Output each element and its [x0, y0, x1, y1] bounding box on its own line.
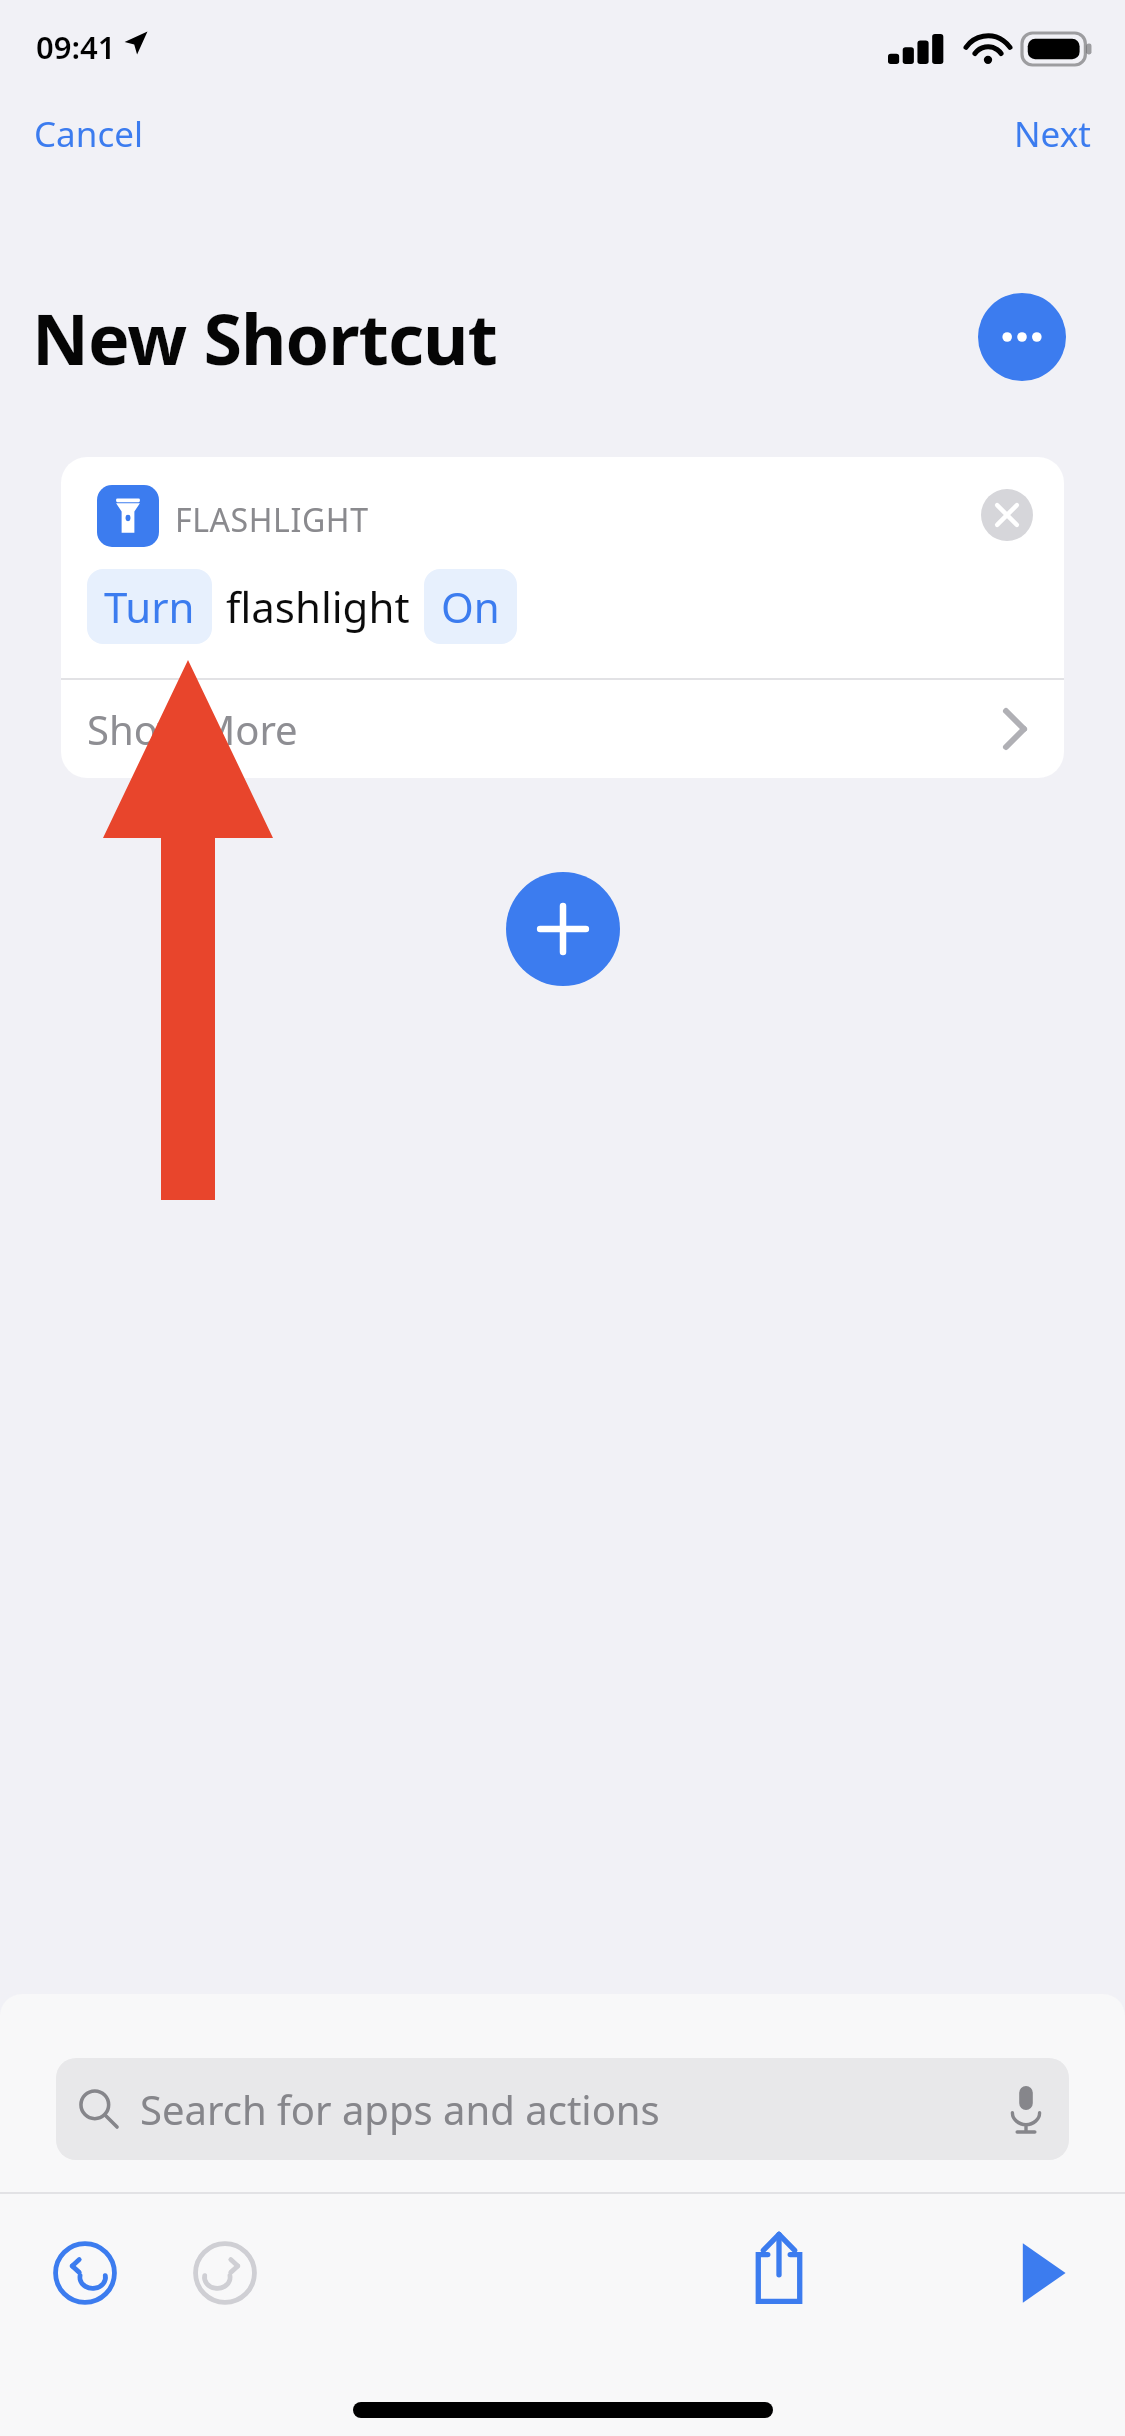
button[interactable]: Turn: [87, 569, 212, 644]
button[interactable]: Search for apps and actions: [56, 2058, 1069, 2160]
button[interactable]: More options: [978, 293, 1066, 381]
button[interactable]: Next: [994, 102, 1111, 166]
staticText: Turn: [104, 578, 195, 635]
staticText: New Shortcut: [32, 290, 497, 385]
button[interactable]: FLASHLIGHT: [61, 457, 1064, 678]
staticText: Search for apps and actions: [140, 2082, 660, 2136]
staticText: Next: [1014, 110, 1091, 158]
button[interactable]: Run shortcut: [986, 2216, 1100, 2330]
button[interactable]: Undo: [28, 2216, 142, 2330]
button[interactable]: Cancel: [14, 102, 163, 166]
button[interactable]: On: [424, 569, 517, 644]
button[interactable]: Redo: [168, 2216, 282, 2330]
button[interactable]: Remove action: [974, 482, 1040, 548]
button[interactable]: Add action: [506, 872, 620, 986]
staticText: Cancel: [34, 110, 143, 158]
button[interactable]: Share: [722, 2212, 836, 2326]
staticText: On: [441, 578, 500, 635]
staticText: 09:41: [36, 26, 116, 68]
staticText: flashlight: [226, 578, 410, 635]
staticText: FLASHLIGHT: [175, 498, 369, 542]
staticText: Show More: [87, 702, 298, 756]
button[interactable]: Show More: [61, 680, 1064, 778]
